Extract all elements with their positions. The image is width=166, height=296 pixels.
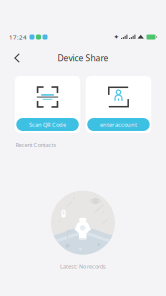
button[interactable]: enter account [87, 118, 150, 131]
staticText: 17:24 [9, 33, 27, 41]
staticText: Scan QR Code [29, 121, 66, 128]
staticText: Device Share [57, 52, 108, 64]
staticText: ✦ [113, 33, 119, 41]
staticText: Latest: No records [60, 263, 106, 270]
staticText: Recent Contacts [15, 141, 56, 149]
button[interactable]: Scan QR Code [16, 118, 79, 131]
button[interactable]: Back [7, 48, 27, 68]
staticText: enter account [100, 121, 137, 128]
